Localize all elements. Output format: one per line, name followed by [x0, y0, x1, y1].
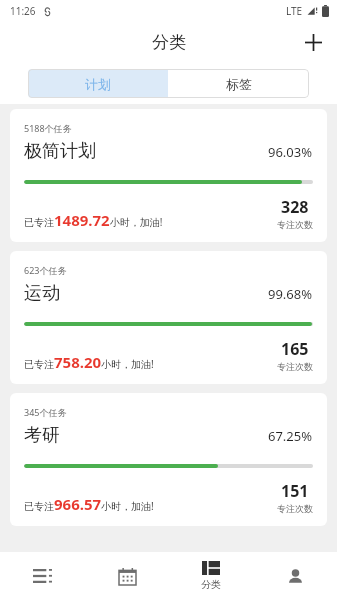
button[interactable]: 标签 — [168, 69, 309, 98]
staticText: 分类 — [152, 32, 186, 53]
staticText: 11:26 — [10, 4, 36, 18]
staticText: 151 — [281, 480, 309, 502]
button[interactable]: Tasks list — [0, 552, 85, 600]
staticText: 96.03% — [268, 143, 313, 161]
staticText: 专注次数 — [277, 503, 313, 514]
staticText: 5188个任务 — [24, 122, 72, 134]
staticText: 99.68% — [268, 285, 313, 303]
staticText: 考研 — [24, 424, 268, 447]
button[interactable]: 5188个任务 — [10, 109, 327, 242]
staticText: 标签 — [226, 76, 252, 92]
staticText: 已专注966.57小时，加油! — [24, 494, 277, 514]
staticText: 已专注1489.72小时，加油! — [24, 210, 277, 230]
staticText: LTE — [286, 4, 303, 18]
button[interactable]: 分类 — [169, 552, 253, 600]
staticText: 专注次数 — [277, 361, 313, 372]
button[interactable]: Add category — [294, 23, 332, 61]
staticText: 165 — [281, 338, 309, 360]
button[interactable]: Profile — [253, 552, 337, 600]
staticText: 345个任务 — [24, 406, 67, 418]
staticText: 已专注758.20小时，加油! — [24, 352, 277, 372]
staticText: 328 — [281, 196, 309, 218]
button[interactable]: 345个任务 — [10, 393, 327, 526]
staticText: 67.25% — [268, 427, 313, 445]
staticText: 运动 — [24, 282, 268, 305]
staticText: 极简计划 — [24, 140, 268, 163]
staticText: 计划 — [85, 76, 111, 92]
button[interactable]: Calendar — [85, 552, 169, 600]
button[interactable]: 623个任务 — [10, 251, 327, 384]
staticText: 623个任务 — [24, 264, 67, 276]
staticText: 专注次数 — [277, 219, 313, 230]
staticText: 分类 — [201, 578, 221, 591]
button[interactable]: 计划 — [28, 69, 168, 98]
